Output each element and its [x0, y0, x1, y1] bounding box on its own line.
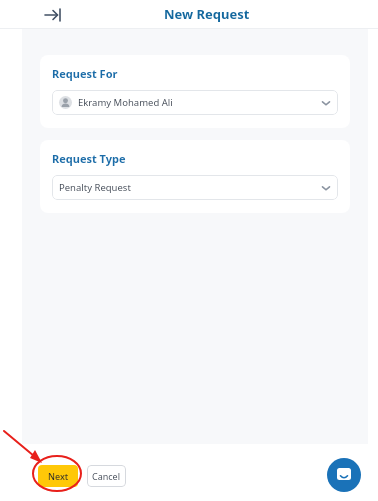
staticText: Penalty Request [59, 181, 131, 194]
staticText: Cancel [92, 470, 121, 482]
staticText: Request Type [52, 151, 126, 166]
button[interactable]: Cancel [87, 465, 126, 487]
staticText: New Request [164, 5, 250, 23]
button[interactable]: Ekramy Mohamed Ali [52, 90, 338, 115]
staticText: Next [48, 470, 69, 482]
button[interactable]: Open chat [327, 458, 361, 492]
button[interactable]: Penalty Request [52, 175, 338, 200]
button[interactable]: Collapse panel [44, 6, 62, 24]
staticText: Ekramy Mohamed Ali [78, 96, 173, 109]
staticText: Request For [52, 66, 118, 81]
button[interactable]: Next [38, 465, 78, 487]
